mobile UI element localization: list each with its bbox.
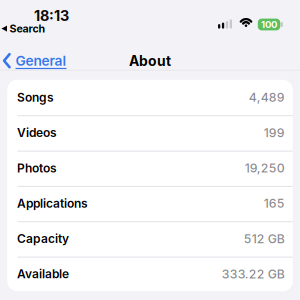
staticText: 199: [264, 125, 285, 140]
staticText: Photos: [17, 161, 57, 175]
staticText: Songs: [17, 90, 54, 105]
staticText: About: [129, 52, 171, 69]
staticText: Capacity: [17, 231, 69, 246]
button[interactable]: Search: [1, 22, 45, 35]
staticText: Available: [17, 267, 69, 281]
button[interactable]: General: [2, 52, 66, 69]
staticText: 512 GB: [244, 231, 285, 246]
staticText: 100: [261, 19, 277, 30]
staticText: Search: [9, 22, 45, 35]
staticText: 18:13: [34, 7, 69, 24]
staticText: 19,250: [245, 161, 285, 175]
staticText: 165: [264, 196, 285, 211]
staticText: Applications: [17, 196, 88, 211]
staticText: General: [15, 52, 66, 69]
staticText: 4,489: [249, 90, 285, 105]
staticText: Videos: [17, 125, 57, 140]
staticText: 333.22 GB: [222, 267, 285, 281]
